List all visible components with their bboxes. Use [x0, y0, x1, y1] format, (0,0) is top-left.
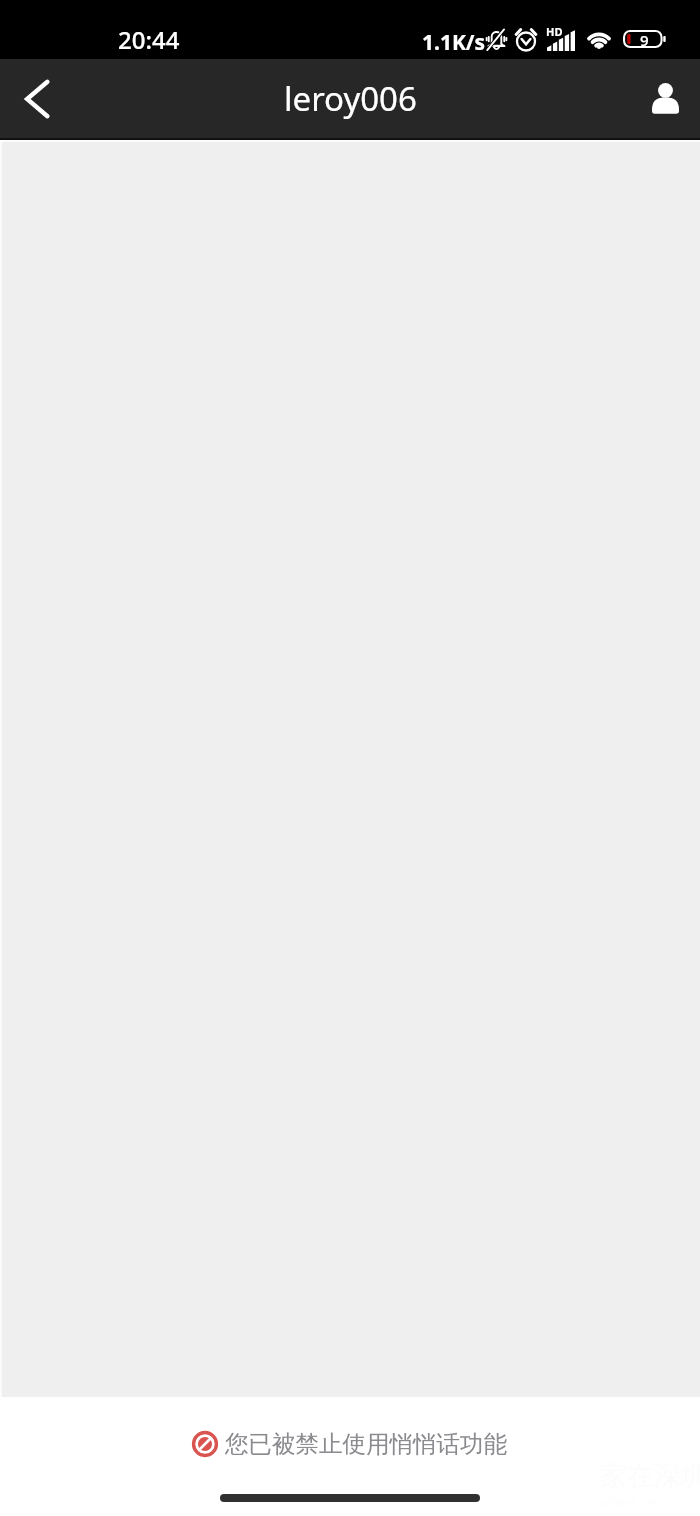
staticText: leroy006 — [284, 76, 417, 121]
button[interactable]: Back — [0, 59, 79, 138]
button[interactable]: Profile — [621, 59, 700, 138]
staticText: 1.1K/s — [422, 28, 486, 57]
staticText: 20:44 — [118, 23, 180, 56]
staticText: 您已被禁止使用悄悄话功能 — [225, 1429, 507, 1459]
staticText: HD — [546, 24, 563, 39]
button[interactable]: 您已被禁止使用悄悄话功能 — [192, 1429, 507, 1459]
staticText: 9 — [640, 30, 649, 48]
